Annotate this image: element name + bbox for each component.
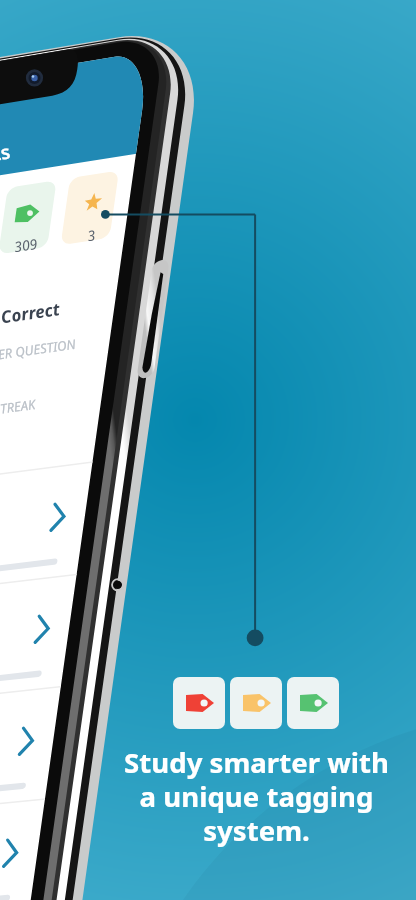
staticText: Study smarter with a unique tagging syst… bbox=[124, 743, 389, 849]
button[interactable]: Tag bbox=[173, 677, 225, 729]
button[interactable]: Tag bbox=[230, 677, 282, 729]
button[interactable]: Tag bbox=[287, 677, 339, 729]
